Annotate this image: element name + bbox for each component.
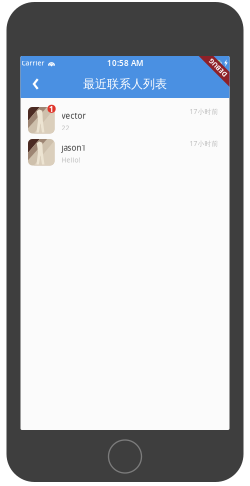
staticText: DEBUG (206, 63, 229, 72)
button[interactable] (20, 130, 229, 162)
button[interactable]: Back (20, 70, 48, 98)
staticText: 最近联系人列表 (83, 77, 167, 91)
staticText: 1 (49, 103, 54, 114)
staticText: Carrier (21, 59, 44, 67)
staticText: 17小时前 (189, 139, 218, 148)
button[interactable]: 1 (20, 98, 229, 130)
staticText: Hello! (61, 155, 80, 164)
staticText: 17小时前 (189, 107, 218, 116)
staticText: vector (61, 110, 85, 121)
staticText: 10:58 AM (107, 58, 143, 68)
staticText: 22 (61, 123, 69, 132)
staticText: jason1 (61, 142, 86, 153)
